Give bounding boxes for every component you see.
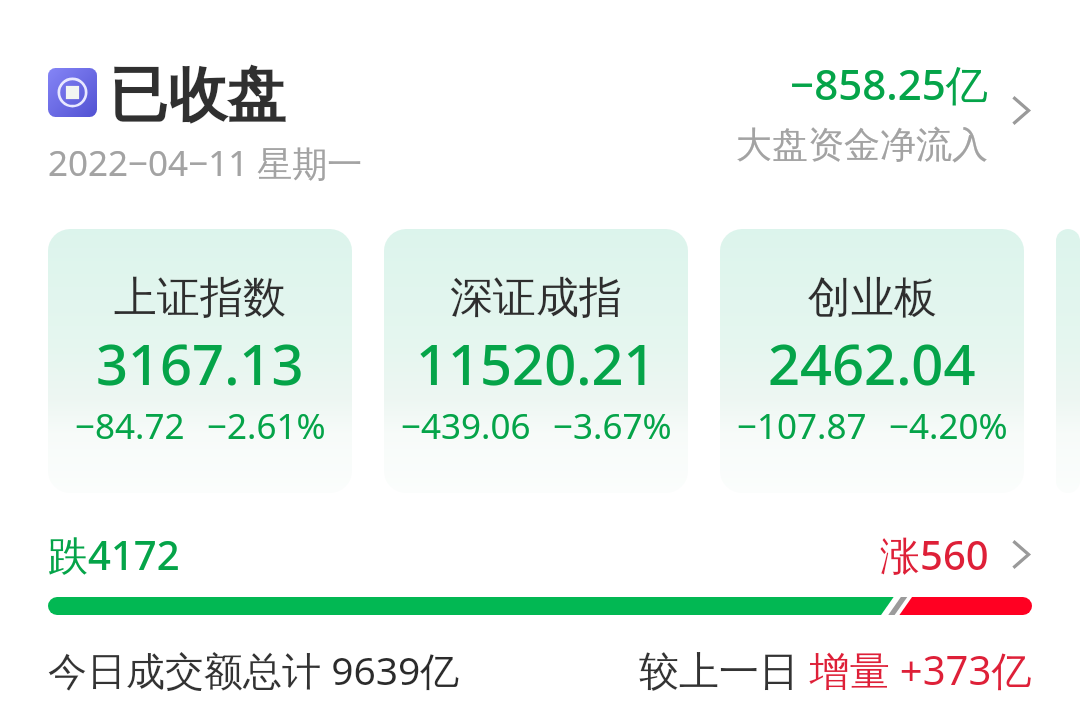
staticText: 较上一日 增量 +373亿 (639, 642, 1032, 697)
staticText: 深证成指 (450, 271, 622, 325)
staticText: 2462.04 (768, 325, 976, 401)
staticText: 11520.21 (416, 325, 656, 401)
staticText: 涨560 (880, 527, 989, 582)
staticText: 上证指数 (114, 271, 286, 325)
button[interactable]: 跌4172 (0, 527, 1080, 582)
staticText: −84.72 (75, 402, 185, 450)
staticText: −439.06 (401, 402, 531, 450)
staticText: −858.25亿 (790, 55, 988, 112)
staticText: 今日成交额总计 9639亿 (48, 643, 460, 696)
button[interactable]: 已收盘 (48, 55, 363, 187)
button[interactable]: −858.25亿 (736, 55, 1031, 167)
other: 大盘资金净流入详情 (1011, 94, 1031, 127)
staticText: 创业板 (808, 271, 937, 325)
staticText: −3.67% (553, 402, 672, 450)
button[interactable]: 创业板 (720, 229, 1024, 493)
staticText: −4.20% (889, 402, 1008, 450)
staticText: 已收盘 (109, 58, 286, 132)
staticText: 2022−04−11 星期一 (48, 139, 363, 187)
staticText: 3167.13 (96, 325, 304, 401)
other: 涨跌家数详情 (1011, 538, 1031, 571)
staticText: −107.87 (737, 402, 867, 450)
button[interactable]: 上证指数 (48, 229, 352, 493)
button[interactable] (1056, 229, 1080, 493)
staticText: 大盘资金净流入 (736, 122, 988, 167)
staticText: −2.61% (207, 402, 326, 450)
button[interactable]: 深证成指 (384, 229, 688, 493)
staticText: 跌4172 (48, 527, 180, 582)
